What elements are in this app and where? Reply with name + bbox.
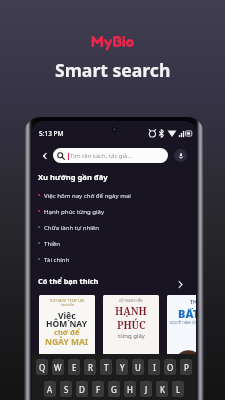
button[interactable]: S (60, 381, 72, 397)
staticText: A (47, 384, 53, 395)
button[interactable]: Hạnh phúc từng giây (32, 203, 196, 219)
button[interactable]: R (84, 359, 96, 375)
button[interactable]: E (68, 359, 80, 375)
staticText: Việc (58, 310, 76, 322)
staticText: chớ để (54, 327, 80, 337)
staticText: HẠNH (115, 304, 147, 318)
button[interactable]: Y (116, 359, 128, 375)
button[interactable]: A (44, 381, 56, 397)
staticText: HÔM NAY (46, 318, 88, 330)
staticText: D (79, 384, 85, 395)
button[interactable]: D (76, 381, 88, 397)
staticText: K (160, 384, 165, 395)
staticText: H (127, 384, 133, 395)
staticText: Tài chính (44, 255, 70, 263)
staticText: BÍ QUYẾT THÀNH CÔNG (170, 321, 196, 325)
button[interactable]: Back (38, 149, 51, 162)
staticText: Y (120, 362, 125, 373)
button[interactable]: Thiền (32, 235, 196, 251)
button[interactable]: Việc hôm nay chớ để ngày mai (32, 187, 196, 203)
button[interactable]: P (180, 359, 192, 375)
staticText: NGÀY MAI (45, 336, 89, 348)
button[interactable]: K (156, 381, 168, 397)
staticText: 5:13 PM (39, 129, 64, 138)
staticText: best seller (61, 303, 75, 307)
button[interactable]: HỒ THANH HIỀN (103, 295, 159, 371)
staticText: Thiền (44, 239, 60, 247)
staticText: Tìm tên sách, tác giả... (70, 152, 133, 160)
button[interactable]: L (172, 381, 184, 397)
button[interactable]: THE (167, 295, 196, 371)
staticText: Có thể bạn thích (38, 276, 99, 286)
staticText: Xu hướng gần đây (38, 172, 108, 182)
staticText: L (176, 384, 181, 395)
button[interactable]: Tìm tên sách, tác giả... (53, 148, 168, 163)
staticText: J (145, 384, 148, 395)
staticText: Hạnh phúc từng giây (44, 207, 105, 215)
staticText: F (96, 384, 101, 395)
staticText: T (104, 362, 109, 373)
button[interactable]: See more (175, 279, 186, 290)
button[interactable]: T (100, 359, 112, 375)
button[interactable]: Tài chính (32, 251, 196, 267)
staticText: MyBio (91, 32, 135, 51)
staticText: BẤT (178, 306, 196, 321)
button[interactable]: W (52, 359, 64, 375)
button[interactable]: Q (36, 359, 48, 375)
staticText: Việc hôm nay chớ để ngày mai (44, 191, 131, 199)
button[interactable]: H (124, 381, 136, 397)
staticText: HỒ THANH HIỀN (119, 299, 143, 303)
button[interactable]: RICHARD TEMPLAR (39, 295, 95, 371)
staticText: I (153, 362, 156, 373)
staticText: Chữa lành tự nhiên (44, 223, 100, 231)
button[interactable]: J (140, 381, 152, 397)
staticText: THE (190, 299, 196, 306)
button[interactable]: U (132, 359, 144, 375)
staticText: từng giây (118, 332, 145, 340)
staticText: E (72, 362, 77, 373)
staticText: P (184, 362, 189, 373)
staticText: Smart search (55, 58, 171, 82)
staticText: S (64, 384, 69, 395)
button[interactable]: G (108, 381, 120, 397)
staticText: O (167, 362, 174, 373)
staticText: PHÚC (117, 318, 146, 332)
button[interactable]: O (164, 359, 176, 375)
button[interactable]: Voice search (174, 149, 187, 162)
staticText: U (135, 362, 141, 373)
staticText: G (111, 384, 117, 395)
staticText: Q (39, 362, 46, 373)
button[interactable]: F (92, 381, 104, 397)
staticText: W (54, 362, 62, 373)
staticText: RICHARD TEMPLAR (50, 298, 85, 303)
button[interactable]: Chữa lành tự nhiên (32, 219, 196, 235)
button[interactable]: I (148, 359, 160, 375)
staticText: R (88, 362, 93, 373)
